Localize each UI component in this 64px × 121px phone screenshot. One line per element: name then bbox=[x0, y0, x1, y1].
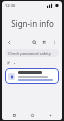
button[interactable]: Home bbox=[26, 111, 38, 120]
button[interactable]: Search bbox=[30, 38, 39, 47]
button[interactable]: Recents bbox=[8, 111, 20, 120]
button[interactable]: Sort bbox=[40, 38, 49, 47]
staticText: 12:30 bbox=[5, 3, 16, 8]
button[interactable]: Back bbox=[5, 38, 14, 47]
staticText: Sign-in info bbox=[11, 18, 54, 29]
button[interactable]: More options bbox=[50, 38, 59, 47]
button[interactable]: Check password safety bbox=[5, 49, 59, 57]
button[interactable]: Sort order bbox=[6, 60, 17, 66]
button[interactable] bbox=[5, 68, 59, 84]
staticText: Check password safety bbox=[8, 51, 51, 56]
button[interactable]: Back bbox=[44, 111, 56, 120]
